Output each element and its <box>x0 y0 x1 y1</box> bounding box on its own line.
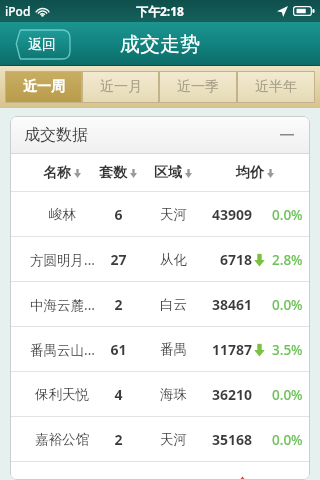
staticText: 保利天悦 <box>35 386 89 403</box>
staticText: 2 <box>114 430 123 449</box>
staticText: 白云 <box>160 296 187 313</box>
staticText: 套数 <box>99 164 127 182</box>
button[interactable]: 峻林 <box>10 192 310 237</box>
button[interactable]: 方圆明月... <box>10 237 310 282</box>
staticText: 番禺 <box>160 341 187 358</box>
staticText: 近一季 <box>177 78 219 96</box>
staticText: 下午2:18 <box>136 3 184 19</box>
button[interactable]: 返回 <box>6 30 70 59</box>
staticText: 0.0% <box>272 431 303 449</box>
staticText: 6718 <box>220 250 253 269</box>
staticText: 27 <box>110 250 127 269</box>
staticText: 0.0% <box>272 206 303 224</box>
staticText: iPod <box>5 3 31 19</box>
button[interactable]: 套数 <box>88 154 148 192</box>
staticText: 3.5% <box>272 341 303 359</box>
staticText: 从化 <box>160 251 187 268</box>
staticText: 海珠 <box>160 386 187 403</box>
staticText: 61 <box>110 340 127 359</box>
button[interactable]: 成交数据 <box>10 116 310 154</box>
button[interactable]: 均价 <box>225 154 285 192</box>
staticText: 成交数据 <box>24 125 88 145</box>
staticText: 方圆明月... <box>30 251 95 269</box>
button[interactable]: 嘉裕公馆 <box>10 417 310 462</box>
staticText: 6 <box>114 205 123 224</box>
staticText: 0.0% <box>272 296 303 314</box>
staticText: 中海云麓... <box>30 296 95 314</box>
button[interactable]: 近一周 <box>5 71 82 103</box>
staticText: 36210 <box>212 385 253 404</box>
staticText: 0.0% <box>272 386 303 404</box>
staticText: 近半年 <box>255 78 297 96</box>
button[interactable]: 名称 <box>32 154 92 192</box>
button[interactable] <box>10 462 310 480</box>
staticText: 4 <box>114 385 123 404</box>
button[interactable]: 近一月 <box>82 71 159 103</box>
button[interactable]: 近半年 <box>237 71 315 103</box>
button[interactable]: 近一季 <box>159 71 237 103</box>
button[interactable]: 番禺云山... <box>10 327 310 372</box>
staticText: 区域 <box>154 164 182 182</box>
staticText: 天河 <box>160 206 187 223</box>
staticText: 38461 <box>212 295 253 314</box>
staticText: 2 <box>114 295 123 314</box>
staticText: 近一月 <box>100 78 142 96</box>
staticText: 名称 <box>43 164 71 182</box>
button[interactable]: 中海云麓... <box>10 282 310 327</box>
staticText: 均价 <box>236 164 264 182</box>
staticText: 峻林 <box>49 206 76 223</box>
staticText: 近一周 <box>23 78 65 96</box>
staticText: 成交走势 <box>120 32 200 57</box>
staticText: 2.8% <box>272 251 303 269</box>
staticText: 返回 <box>28 36 56 54</box>
staticText: 43909 <box>212 205 253 224</box>
button[interactable]: 保利天悦 <box>10 372 310 417</box>
staticText: 番禺云山... <box>30 341 95 359</box>
staticText: 11787 <box>212 340 253 359</box>
other: Collapse <box>278 126 296 144</box>
staticText: 嘉裕公馆 <box>35 431 89 448</box>
staticText: 天河 <box>160 431 187 448</box>
staticText: 35168 <box>212 430 253 449</box>
button[interactable]: 区域 <box>143 154 203 192</box>
